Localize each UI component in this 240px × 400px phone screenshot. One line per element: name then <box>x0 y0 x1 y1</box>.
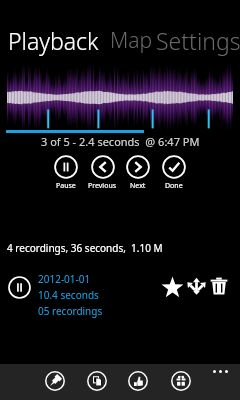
button[interactable]: 2012-01-01 <box>0 272 88 318</box>
staticText: Pause <box>56 181 76 191</box>
button[interactable]: Favorite <box>161 276 184 299</box>
button[interactable]: Share <box>186 276 207 297</box>
button[interactable]: Gift <box>169 369 193 393</box>
button[interactable]: Map <box>110 26 153 55</box>
button[interactable]: Pin <box>43 369 67 393</box>
button[interactable]: Playback <box>8 25 99 56</box>
staticText: 3 of 5 - 2.4 seconds @ 6:47 PM <box>41 134 200 149</box>
button[interactable]: Delete <box>209 276 229 296</box>
button[interactable]: Like <box>126 369 150 393</box>
button[interactable]: More options <box>210 365 230 377</box>
button[interactable]: Settings <box>156 25 240 56</box>
staticText: Next <box>130 181 146 191</box>
staticText: 4 recordings, 36 seconds, 1.10 M <box>7 241 163 255</box>
staticText: Done <box>165 181 183 191</box>
button[interactable]: Pause <box>49 155 83 191</box>
staticText: 10.4 seconds <box>38 288 99 302</box>
button[interactable]: Previous <box>85 155 119 191</box>
button[interactable]: Copy <box>85 369 109 393</box>
staticText: Previous <box>88 181 117 191</box>
button[interactable]: Next <box>121 155 155 191</box>
button[interactable]: Done <box>157 155 191 191</box>
staticText: 05 recordings <box>38 304 103 318</box>
staticText: 2012-01-01 <box>38 272 91 286</box>
